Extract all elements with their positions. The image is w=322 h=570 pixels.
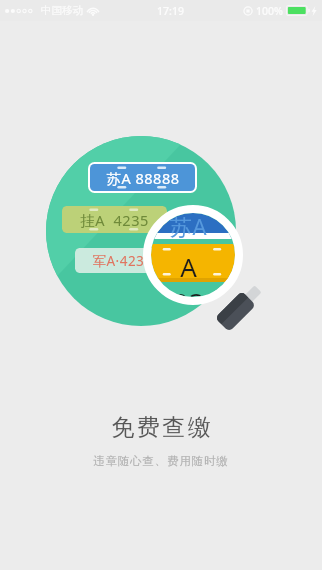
staticText: 苏A — [169, 213, 208, 241]
staticText: 挂A 4235 — [80, 210, 149, 230]
staticText: 苏A 88888 — [106, 168, 180, 188]
staticText: A 4235 — [151, 249, 231, 297]
staticText: 免费查缴 — [110, 413, 212, 442]
staticText: 军A·4235 — [92, 252, 153, 270]
staticText: 17:19 — [157, 4, 184, 18]
staticText: 中国移动 — [41, 4, 83, 17]
other: 车牌违章查询插图 — [46, 134, 276, 349]
staticText: 违章随心查、费用随时缴 — [93, 454, 229, 468]
staticText: 100% — [256, 4, 283, 18]
